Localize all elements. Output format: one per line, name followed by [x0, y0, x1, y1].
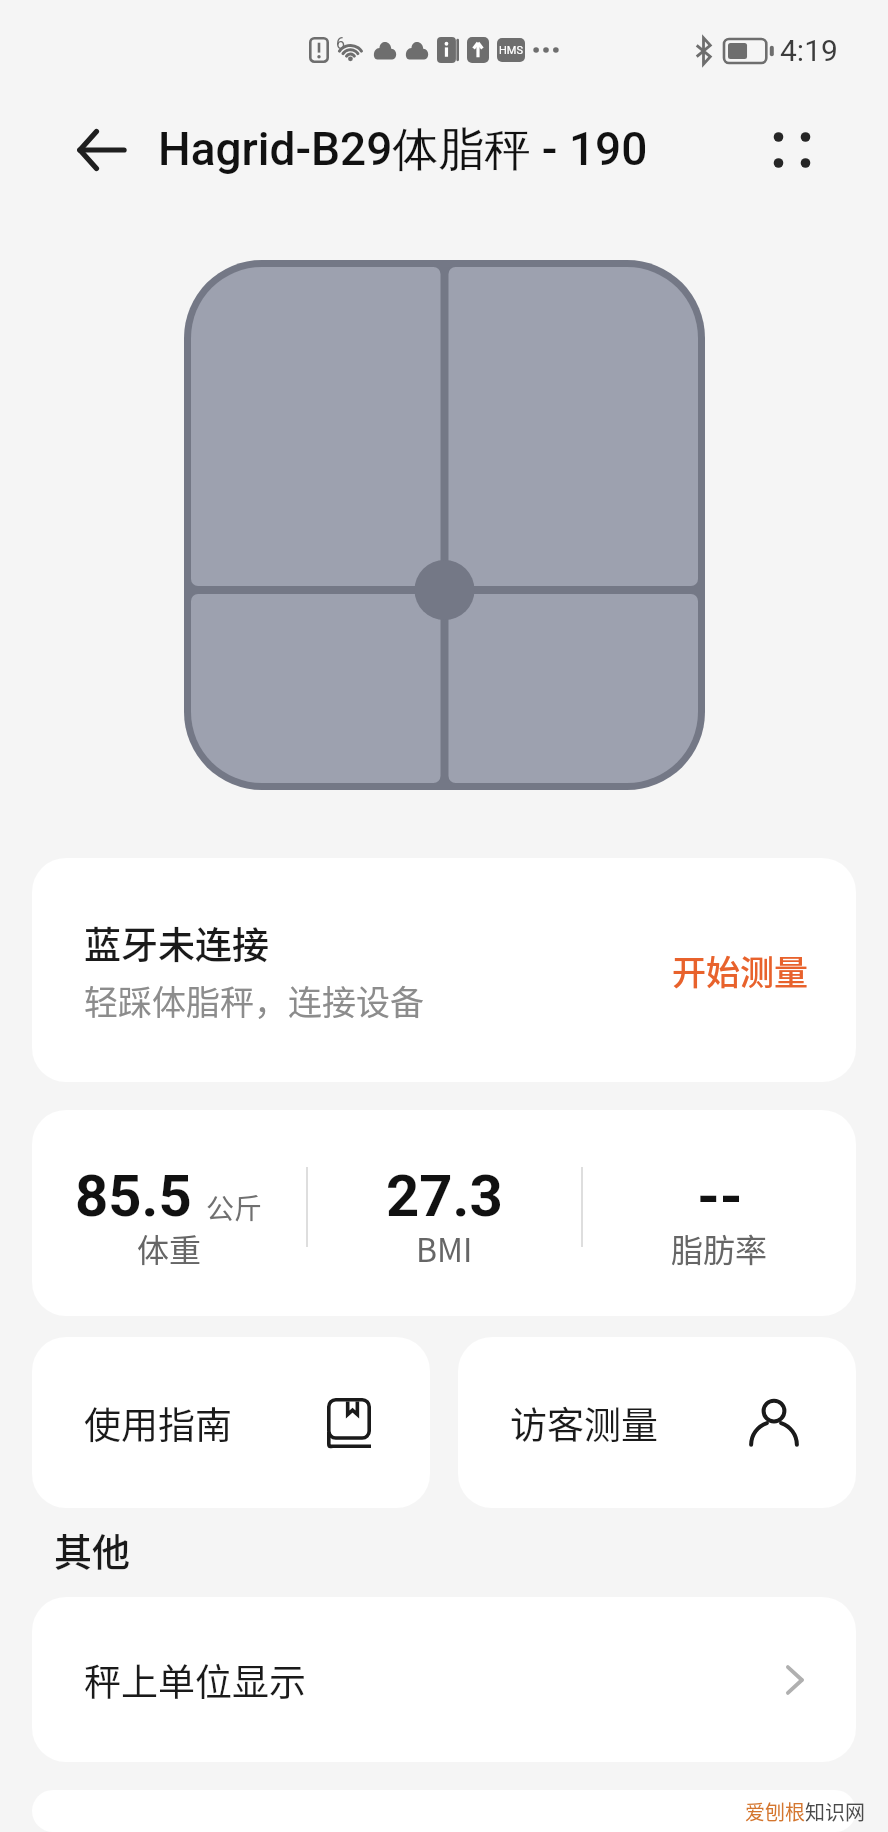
staticText: 6 [336, 34, 345, 53]
staticText: Hagrid-B29体脂秤 - 190 [158, 121, 648, 179]
staticText: 脂肪率 [671, 1225, 768, 1271]
staticText: 27.3 [386, 1162, 503, 1230]
button[interactable]: 蓝牙未连接 [32, 858, 856, 1082]
button[interactable]: More options [758, 116, 826, 184]
staticText: -- [697, 1162, 743, 1230]
button[interactable]: Back [68, 116, 136, 184]
staticText: 4:19 [780, 33, 838, 68]
staticText: 知识网 [805, 1797, 865, 1826]
staticText: 开始测量 [672, 946, 808, 995]
staticText: BMI [416, 1225, 473, 1271]
staticText: 公斤 [206, 1187, 263, 1228]
staticText: 使用指南 [84, 1396, 232, 1450]
staticText: 秤上单位显示 [84, 1653, 306, 1707]
staticText: 轻踩体脂秤，连接设备 [84, 976, 424, 1025]
staticText: 蓝牙未连接 [84, 916, 269, 970]
staticText: 85.5 [75, 1162, 192, 1230]
staticText: 访客测量 [510, 1396, 658, 1450]
button[interactable]: 访客测量 [458, 1337, 856, 1508]
staticText: 爱刨根 [745, 1797, 805, 1826]
staticText: 体重 [137, 1225, 202, 1271]
button[interactable]: 使用指南 [32, 1337, 430, 1508]
staticText: HMS [499, 44, 523, 57]
button[interactable]: 秤上单位显示 [32, 1597, 856, 1762]
staticText: 其他 [54, 1522, 131, 1577]
